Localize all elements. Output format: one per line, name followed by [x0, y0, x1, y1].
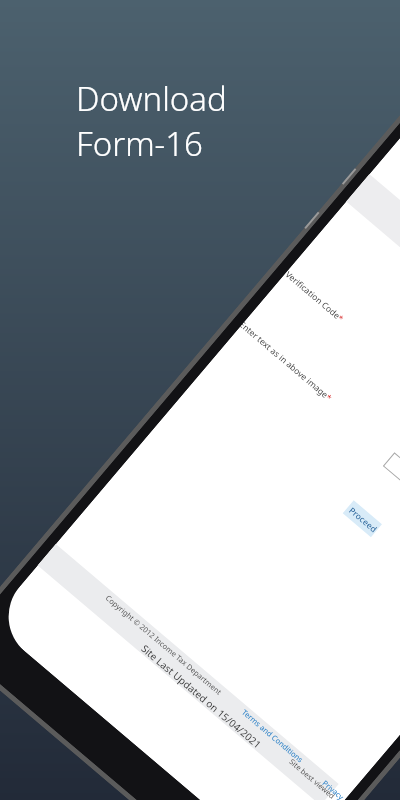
staticText: Enter text as in above image* — [238, 320, 334, 404]
button[interactable]: Privacy — [320, 778, 347, 800]
button[interactable]: Enter verification code — [383, 452, 400, 587]
button[interactable]: Terms and Conditions — [240, 707, 305, 764]
button[interactable]: Proceed — [343, 500, 382, 537]
staticText: Verification Code* — [283, 269, 346, 325]
staticText: Download Form-16 — [76, 76, 227, 165]
staticText: Site best viewed — [287, 756, 337, 800]
staticText: Site Last Updated on 15/04/2021 — [138, 641, 265, 752]
staticText: Copyright © 2012 Income Tax Department — [104, 593, 224, 697]
staticText: Proceed — [346, 505, 380, 536]
